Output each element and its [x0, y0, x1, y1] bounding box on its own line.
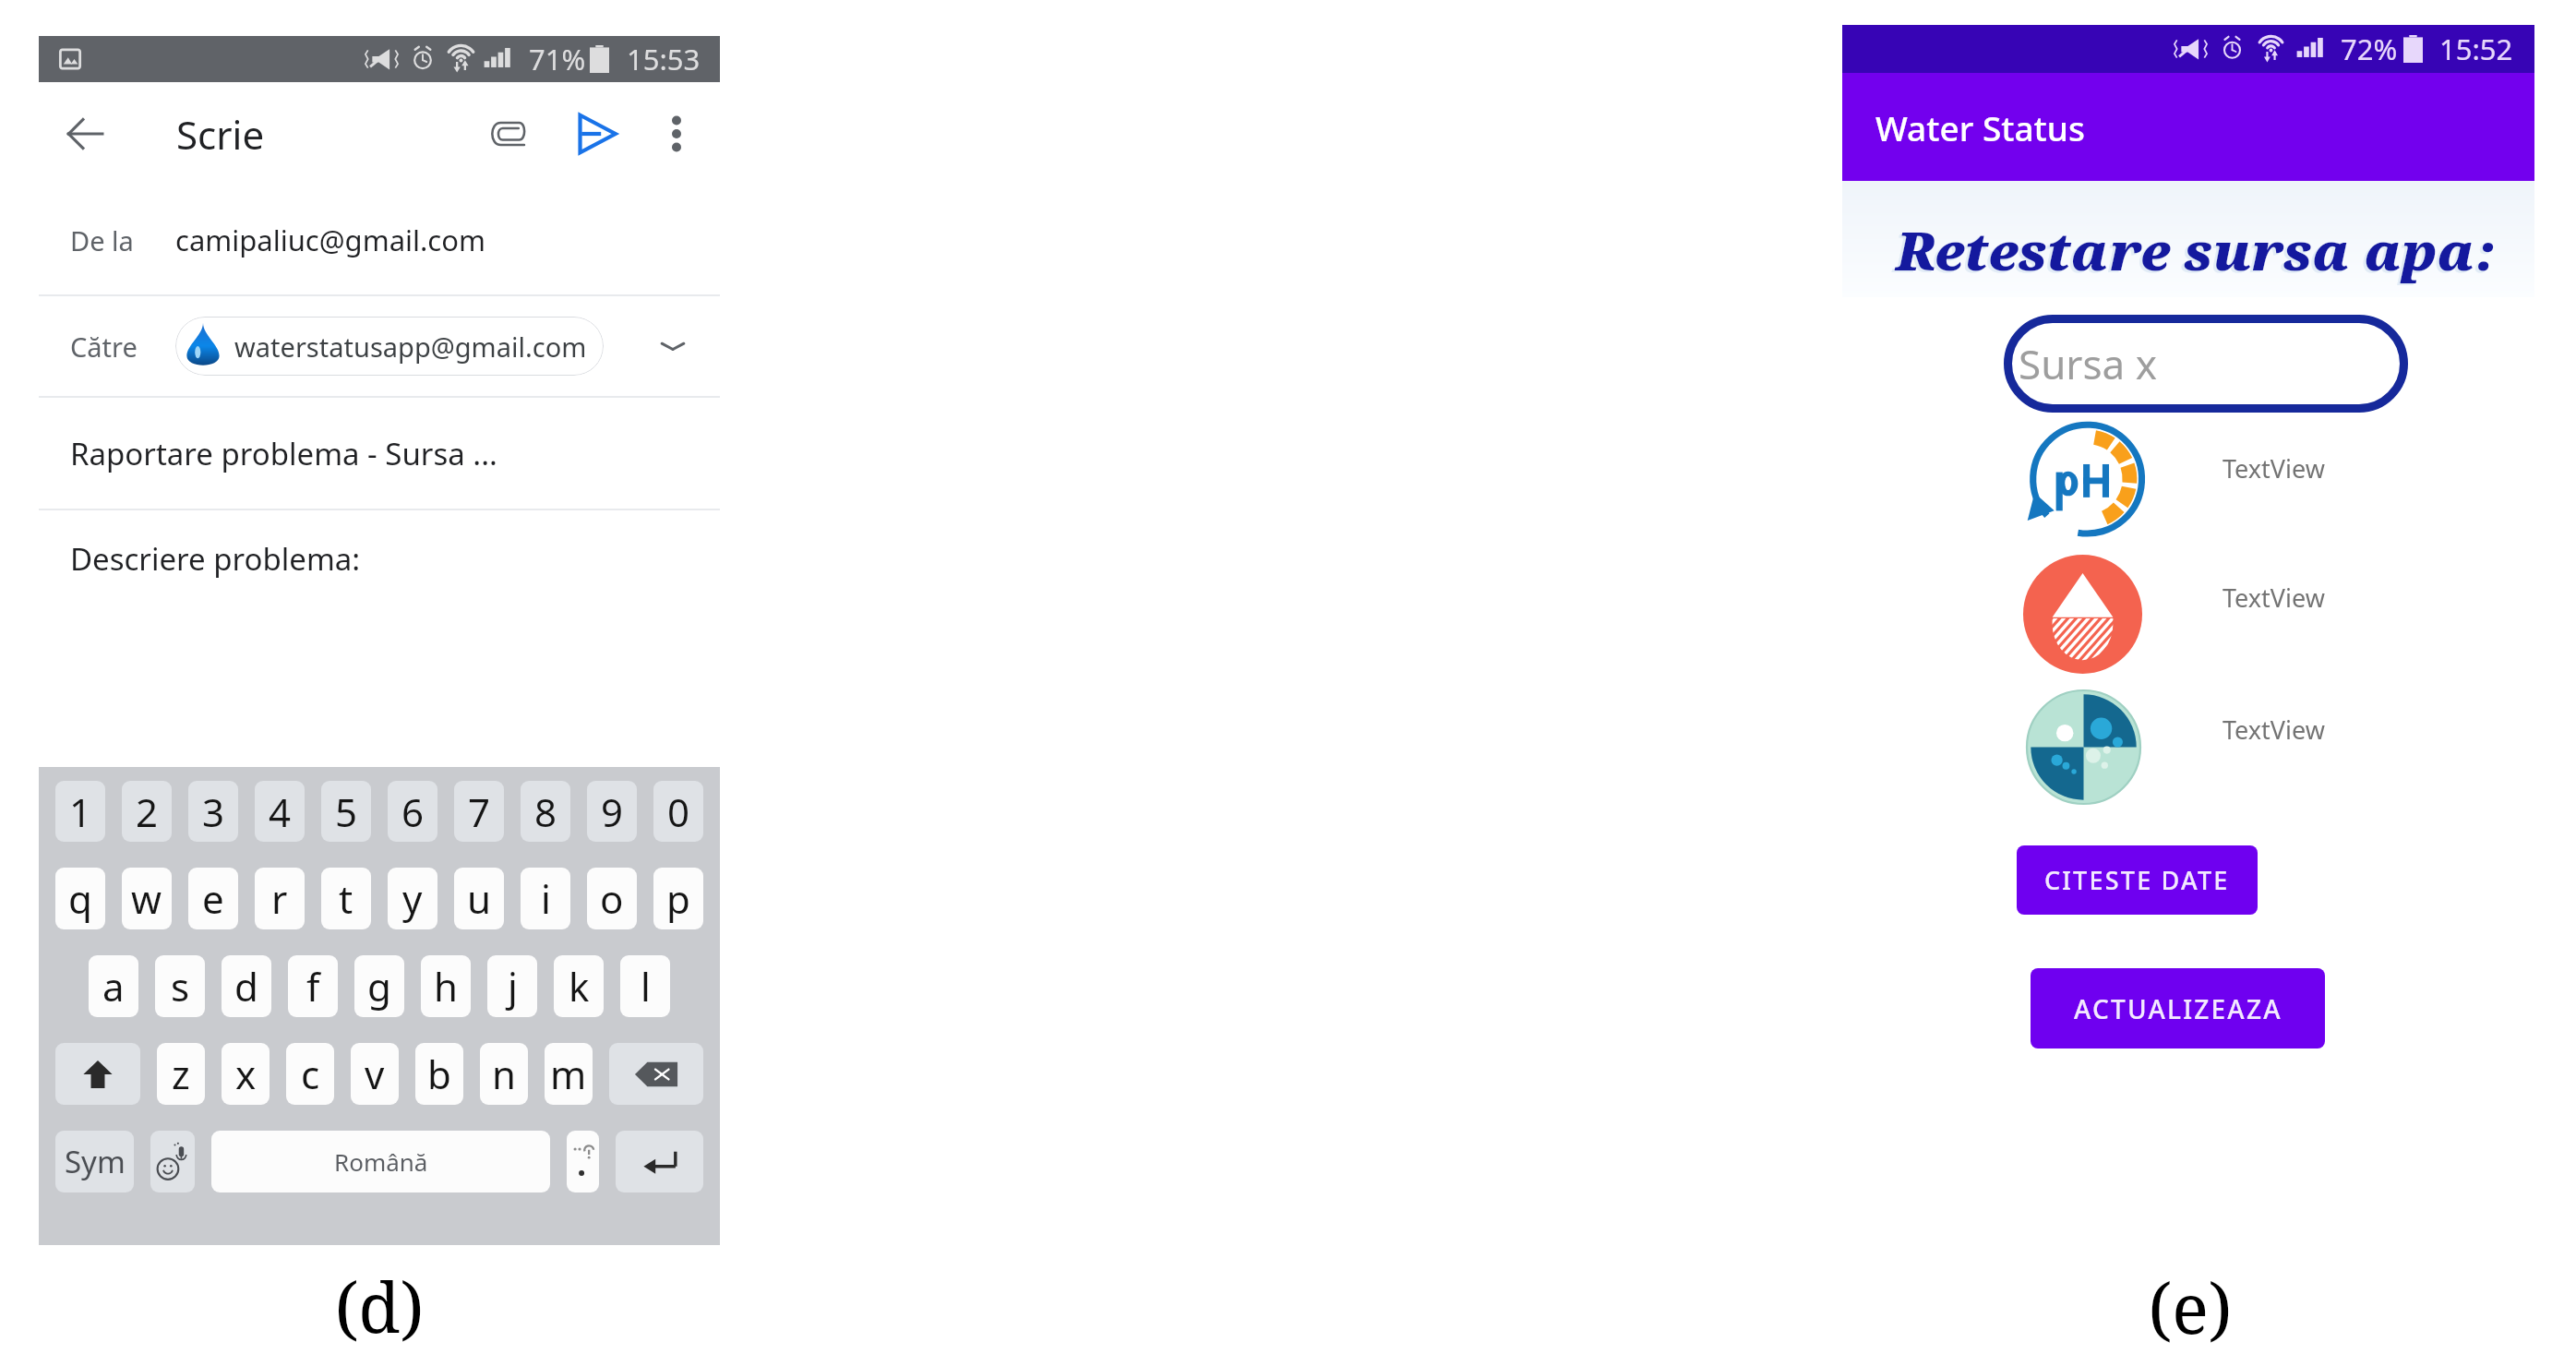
staticText: a — [102, 960, 125, 1013]
button[interactable]: g — [354, 955, 404, 1017]
button[interactable]: s — [155, 955, 205, 1017]
staticText: z — [172, 1048, 190, 1100]
button[interactable]: 6 — [388, 781, 437, 842]
staticText: 15:53 — [627, 40, 701, 78]
staticText: Sym — [65, 1141, 126, 1182]
button[interactable]: 7 — [454, 781, 504, 842]
staticText: camipaliuc@gmail.com — [175, 221, 485, 259]
button[interactable]: Send — [558, 95, 636, 173]
staticText: Descriere problema: — [70, 538, 361, 580]
staticText: Scrie — [176, 108, 265, 161]
staticText: 0 — [667, 785, 690, 838]
button[interactable]: k — [554, 955, 604, 1017]
button[interactable]: q — [55, 868, 105, 929]
button[interactable]: l — [620, 955, 670, 1017]
button[interactable]: 9 — [587, 781, 637, 842]
button[interactable]: z — [157, 1043, 205, 1105]
staticText: De la — [70, 222, 134, 258]
button[interactable]: h — [421, 955, 471, 1017]
button[interactable]: 2 — [122, 781, 172, 842]
button[interactable]: v — [351, 1043, 399, 1105]
staticText: d — [234, 960, 258, 1013]
staticText: Către — [70, 329, 138, 365]
button[interactable]: De la — [39, 186, 720, 294]
button[interactable]: c — [286, 1043, 334, 1105]
button[interactable]: w — [122, 868, 172, 929]
staticText: Retestare sursa apa: — [1896, 214, 2498, 286]
staticText: Water Status — [1875, 104, 2085, 150]
staticText: Raportare problema - Sursa ... — [70, 433, 497, 474]
button[interactable]: Expand recipients — [643, 317, 702, 376]
button[interactable]: d — [222, 955, 271, 1017]
button[interactable]: CITESTE DATE — [2017, 845, 2258, 915]
button[interactable]: Română — [211, 1131, 550, 1192]
button[interactable]: 0 — [653, 781, 703, 842]
staticText: t — [339, 872, 353, 925]
button[interactable]: Emoji and voice input — [150, 1131, 195, 1192]
button[interactable]: Back — [46, 95, 124, 173]
button[interactable]: b — [415, 1043, 463, 1105]
button[interactable]: pH level — [2020, 417, 2147, 544]
staticText: v — [365, 1048, 385, 1100]
staticText: 4 — [269, 785, 292, 838]
button[interactable]: a — [89, 955, 138, 1017]
button[interactable]: 5 — [321, 781, 371, 842]
button[interactable]: Attach file — [468, 95, 545, 173]
staticText: k — [569, 960, 590, 1013]
button[interactable]: Period — [567, 1131, 599, 1192]
staticText: 5 — [335, 785, 358, 838]
button[interactable]: 4 — [255, 781, 305, 842]
button[interactable]: Turbidity — [2023, 555, 2142, 674]
staticText: CITESTE DATE — [2044, 863, 2230, 897]
button[interactable]: Backspace — [609, 1043, 703, 1105]
staticText: g — [367, 960, 391, 1013]
staticText: 7 — [468, 785, 491, 838]
button[interactable]: n — [480, 1043, 528, 1105]
button[interactable]: Shift — [55, 1043, 140, 1105]
staticText: waterstatusapp@gmail.com — [234, 329, 587, 365]
button[interactable]: x — [222, 1043, 270, 1105]
button[interactable]: ACTUALIZEAZA — [2031, 968, 2325, 1048]
staticText: w — [131, 872, 162, 925]
button[interactable]: 1 — [55, 781, 105, 842]
staticText: s — [171, 960, 190, 1013]
button[interactable]: Water quality — [2027, 690, 2140, 804]
button[interactable]: Descriere problema: — [39, 510, 720, 606]
staticText: 2 — [136, 785, 159, 838]
button[interactable]: t — [321, 868, 371, 929]
button[interactable]: r — [255, 868, 305, 929]
staticText: Sursa x — [2019, 336, 2157, 391]
button[interactable]: 3 — [188, 781, 238, 842]
staticText: h — [434, 960, 458, 1013]
staticText: 3 — [202, 785, 225, 838]
staticText: p — [666, 872, 690, 925]
staticText: b — [427, 1048, 451, 1100]
staticText: i — [541, 872, 551, 925]
button[interactable]: y — [388, 868, 437, 929]
button[interactable]: Raportare problema - Sursa ... — [39, 398, 720, 509]
button[interactable]: Sursa x — [2004, 315, 2408, 413]
button[interactable]: 8 — [521, 781, 570, 842]
button[interactable]: p — [653, 868, 703, 929]
button[interactable]: Sym — [55, 1131, 134, 1192]
button[interactable]: u — [454, 868, 504, 929]
button[interactable]: Către — [39, 296, 720, 396]
button[interactable]: i — [521, 868, 570, 929]
staticText: n — [492, 1048, 516, 1100]
staticText: (e) — [2126, 1261, 2255, 1354]
button[interactable]: e — [188, 868, 238, 929]
button[interactable]: More options — [638, 95, 715, 173]
staticText: ACTUALIZEAZA — [2074, 991, 2282, 1026]
staticText: Retestare sursa apa: — [1893, 216, 2495, 288]
staticText: 1 — [69, 785, 92, 838]
staticText: m — [550, 1048, 587, 1100]
button[interactable]: f — [288, 955, 338, 1017]
button[interactable]: Enter — [616, 1131, 703, 1192]
staticText: 15:52 — [2439, 30, 2513, 68]
button[interactable]: j — [487, 955, 537, 1017]
staticText: u — [467, 872, 491, 925]
staticText: TextView — [2223, 581, 2325, 615]
button[interactable]: m — [545, 1043, 593, 1105]
staticText: f — [306, 960, 320, 1013]
button[interactable]: o — [587, 868, 637, 929]
